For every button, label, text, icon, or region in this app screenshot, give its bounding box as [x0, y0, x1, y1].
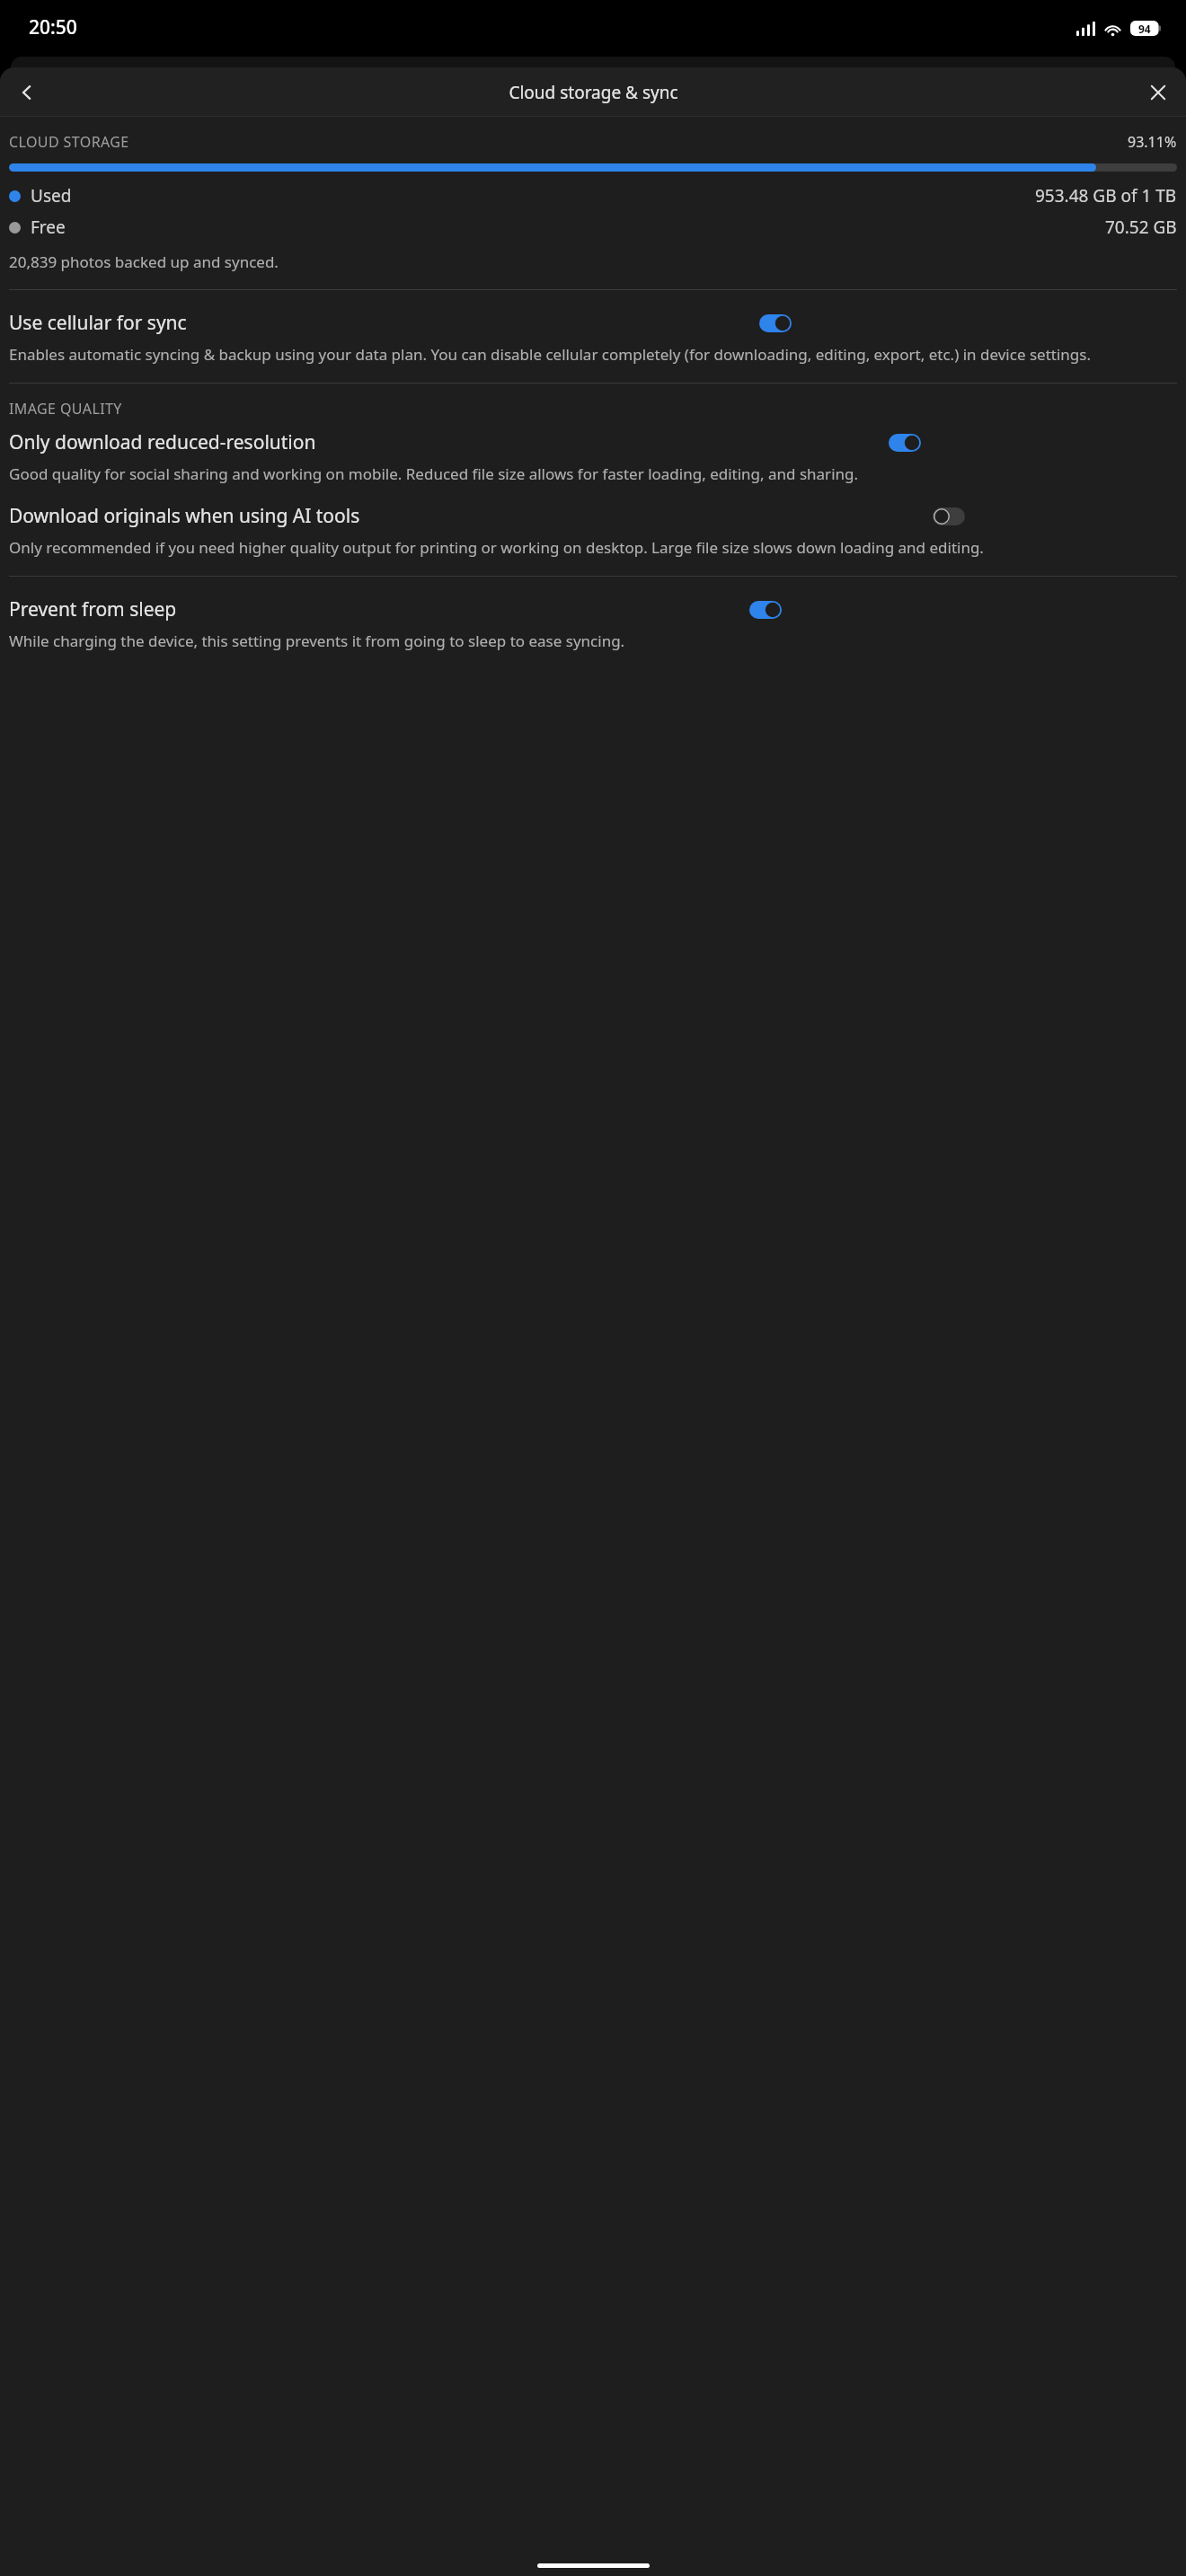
- button[interactable]: Close: [1137, 71, 1180, 114]
- staticText: CLOUD STORAGE: [9, 132, 129, 152]
- staticText: While charging the device, this setting …: [9, 631, 625, 651]
- staticText: Only download reduced-resolution: [9, 429, 316, 455]
- staticText: Only recommended if you need higher qual…: [9, 537, 984, 558]
- staticText: Enables automatic syncing & backup using…: [9, 344, 1091, 365]
- staticText: Cloud storage & sync: [509, 81, 678, 104]
- staticText: Download originals when using AI tools: [9, 503, 360, 529]
- button[interactable]: Back: [5, 71, 49, 114]
- staticText: 94: [1138, 22, 1151, 36]
- button[interactable]: Toggle on: [759, 314, 792, 332]
- staticText: 93.11%: [1128, 132, 1177, 152]
- staticText: Free: [31, 216, 66, 239]
- button[interactable]: Only download reduced-resolution: [9, 429, 1177, 455]
- button[interactable]: Toggle off: [933, 507, 965, 525]
- staticText: IMAGE QUALITY: [9, 399, 122, 419]
- button[interactable]: Toggle on: [889, 434, 921, 452]
- button[interactable]: Toggle on: [749, 601, 782, 619]
- staticText: Used: [31, 184, 72, 207]
- button[interactable]: Used: [9, 184, 1177, 207]
- staticText: 70.52 GB: [1105, 216, 1177, 239]
- button[interactable]: Download originals when using AI tools: [9, 503, 1177, 529]
- staticText: Good quality for social sharing and work…: [9, 463, 859, 484]
- button[interactable]: Free: [9, 216, 1177, 239]
- button[interactable]: Prevent from sleep: [9, 596, 1177, 622]
- staticText: 20:50: [29, 14, 77, 40]
- staticText: 20,839 photos backed up and synced.: [9, 251, 279, 272]
- staticText: 953.48 GB of 1 TB: [1035, 184, 1177, 207]
- button[interactable]: Use cellular for sync: [9, 310, 1177, 336]
- staticText: Use cellular for sync: [9, 310, 187, 336]
- staticText: Prevent from sleep: [9, 596, 177, 622]
